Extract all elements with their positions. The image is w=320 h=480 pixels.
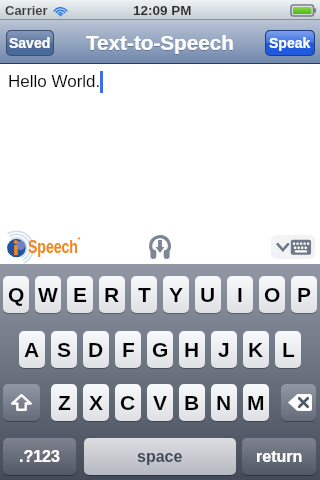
staticText: D	[88, 338, 104, 361]
staticText: U	[200, 283, 216, 306]
button[interactable]: E	[67, 276, 93, 313]
button[interactable]: L	[275, 331, 301, 368]
staticText: Z	[58, 391, 71, 414]
staticText: B	[184, 391, 200, 414]
button[interactable]: V	[147, 384, 173, 421]
button[interactable]: U	[195, 276, 221, 313]
button[interactable]: Hide keyboard	[271, 235, 315, 259]
staticText: M	[247, 391, 265, 414]
staticText: 12:09 PM	[133, 3, 192, 18]
button[interactable]: C	[115, 384, 141, 421]
button[interactable]: M	[243, 384, 269, 421]
staticText: N	[216, 391, 232, 414]
staticText: .?123	[19, 448, 60, 466]
staticText: Q	[8, 283, 25, 306]
staticText: O	[264, 283, 281, 306]
staticText: G	[152, 338, 169, 361]
button[interactable]: J	[211, 331, 237, 368]
staticText: Saved	[9, 35, 51, 51]
button[interactable]: A	[19, 331, 45, 368]
button[interactable]: K	[243, 331, 269, 368]
button[interactable]: Download audio	[146, 232, 174, 262]
button[interactable]: Speak	[266, 31, 314, 55]
staticText: A	[24, 338, 40, 361]
staticText: Speech	[28, 237, 79, 257]
button[interactable]: .?123	[3, 438, 76, 475]
button[interactable]: G	[147, 331, 173, 368]
button[interactable]: Y	[163, 276, 189, 313]
staticText: Carrier	[5, 3, 48, 18]
button[interactable]: O	[259, 276, 285, 313]
staticText: H	[184, 338, 200, 361]
staticText: I	[237, 283, 243, 306]
button[interactable]: iSpeech	[4, 231, 84, 261]
staticText: P	[297, 283, 312, 306]
button[interactable]: space	[84, 438, 236, 475]
button[interactable]: Saved	[7, 31, 53, 55]
staticText: Y	[169, 283, 184, 306]
staticText: R	[104, 283, 120, 306]
staticText: Hello World.	[8, 72, 101, 91]
staticText: F	[122, 338, 135, 361]
button[interactable]: T	[131, 276, 157, 313]
staticText: X	[89, 391, 104, 414]
button[interactable]: B	[179, 384, 205, 421]
button[interactable]: Z	[51, 384, 77, 421]
staticText: Text-to-Speech	[86, 32, 234, 55]
staticText: V	[153, 391, 168, 414]
button[interactable]: R	[99, 276, 125, 313]
button[interactable]: N	[211, 384, 237, 421]
staticText: return	[256, 448, 303, 466]
staticText: K	[248, 338, 264, 361]
button[interactable]: F	[115, 331, 141, 368]
staticText: T	[138, 283, 151, 306]
staticText: Text-to-Speech	[86, 31, 234, 54]
staticText: W	[38, 283, 58, 306]
button[interactable]: P	[291, 276, 317, 313]
button[interactable]: S	[51, 331, 77, 368]
button[interactable]: Backspace	[281, 384, 316, 421]
staticText: Speak	[269, 35, 311, 51]
staticText: J	[218, 338, 230, 361]
staticText: space	[137, 448, 183, 466]
button[interactable]: W	[35, 276, 61, 313]
staticText: S	[57, 338, 72, 361]
staticText: E	[73, 283, 88, 306]
staticText: C	[120, 391, 136, 414]
button[interactable]: H	[179, 331, 205, 368]
button[interactable]: D	[83, 331, 109, 368]
button[interactable]: Q	[3, 276, 29, 313]
button[interactable]: Shift	[3, 384, 40, 421]
button[interactable]: return	[242, 438, 316, 475]
staticText: L	[282, 338, 295, 361]
button[interactable]: X	[83, 384, 109, 421]
button[interactable]: I	[227, 276, 253, 313]
